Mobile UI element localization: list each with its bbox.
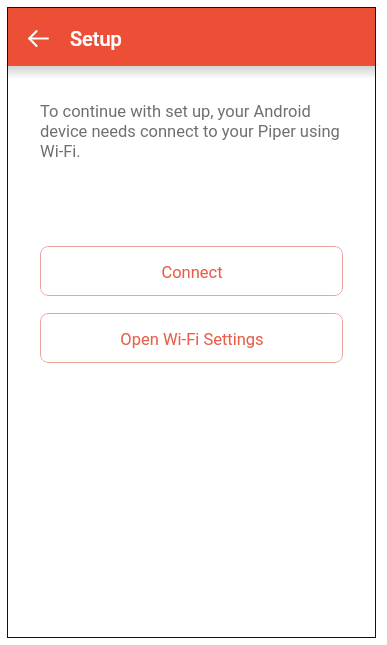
staticText: To continue with set up, your Android de… <box>40 102 340 161</box>
staticText: Open Wi-Fi Settings <box>120 330 264 349</box>
button[interactable]: Open Wi-Fi Settings <box>40 313 343 363</box>
staticText: Connect <box>161 263 223 282</box>
button[interactable]: Connect <box>40 246 343 296</box>
staticText: Setup <box>70 27 122 50</box>
button[interactable]: Back <box>18 18 58 58</box>
